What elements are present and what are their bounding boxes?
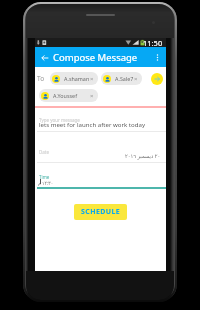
staticText: SCHEDULE <box>81 207 121 217</box>
staticText: To <box>37 74 50 83</box>
staticText: ١٢:٣٠ م <box>38 180 54 186</box>
staticText: 11:50 <box>143 38 163 47</box>
button[interactable]: SCHEDULE <box>74 204 127 220</box>
button[interactable]: A.Sale7 <box>101 72 142 85</box>
staticText: ٢٠ ديسمبر ٢٠١٦ <box>125 152 161 159</box>
staticText: × <box>90 92 94 100</box>
button[interactable]: Add recipient <box>151 73 163 85</box>
button[interactable]: A.Youssef <box>39 89 98 102</box>
staticText: Type your message <box>39 117 80 123</box>
staticText: Date <box>39 149 49 155</box>
button[interactable]: A.shaman <box>50 72 98 85</box>
staticText: Time <box>39 174 50 180</box>
staticText: A.shaman <box>64 75 90 82</box>
staticText: × <box>90 75 94 83</box>
staticText: A.Youssef <box>53 92 77 99</box>
staticText: × <box>134 75 138 83</box>
staticText: lets meet for launch after work today <box>39 120 145 128</box>
staticText: Compose Message <box>53 51 138 64</box>
button[interactable]: More options <box>152 52 163 63</box>
button[interactable]: Back <box>39 52 50 63</box>
staticText: A.Sale7 <box>115 75 134 82</box>
